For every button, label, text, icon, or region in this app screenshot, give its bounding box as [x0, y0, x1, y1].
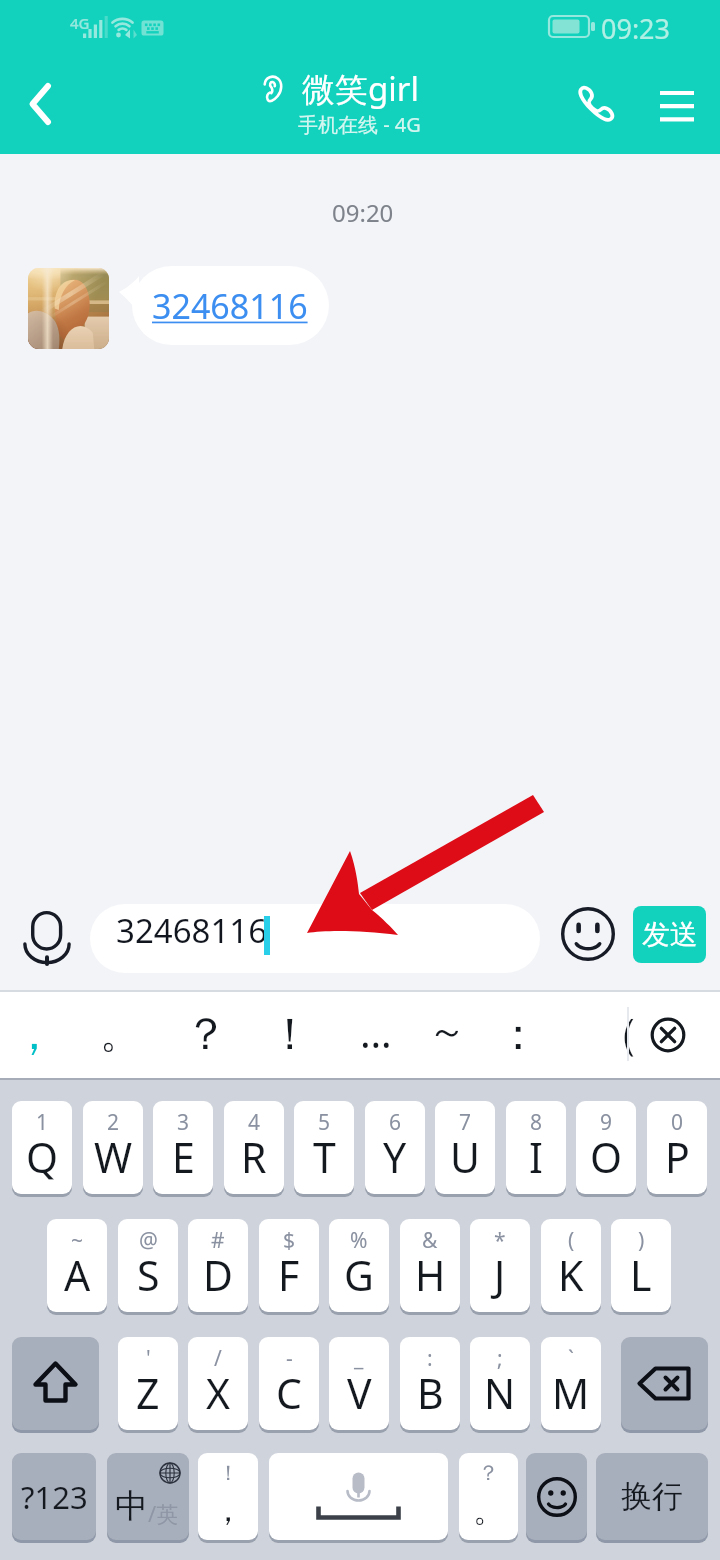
staticText: 09:20 [332, 196, 394, 229]
button[interactable]: 3 [153, 1101, 213, 1194]
staticText: _ [354, 1344, 364, 1373]
button[interactable]: Emoji [553, 899, 623, 969]
button[interactable]: ` [541, 1337, 601, 1430]
staticText: - [286, 1344, 293, 1373]
staticText: R [241, 1129, 267, 1185]
staticText: 3 [177, 1108, 190, 1137]
button[interactable]: 换行 [596, 1453, 708, 1540]
staticText: 09:23 [601, 10, 671, 47]
staticText: ?123 [21, 1476, 88, 1518]
button[interactable]: ？ [459, 1453, 518, 1540]
staticText: @ [139, 1226, 158, 1255]
staticText: ！ [268, 1007, 312, 1062]
staticText: 9 [600, 1108, 613, 1137]
button[interactable]: ！ [198, 1453, 258, 1540]
button[interactable]: Backspace [621, 1337, 708, 1430]
button[interactable]: _ [329, 1337, 389, 1430]
staticText: ) [638, 1226, 645, 1255]
staticText: V [347, 1365, 372, 1421]
button[interactable]: # [188, 1219, 248, 1312]
staticText: 中 [115, 1485, 148, 1527]
staticText: 手机在线 - 4G [298, 111, 421, 138]
button[interactable]: 6 [365, 1101, 425, 1194]
button[interactable]: ~ [47, 1219, 107, 1312]
staticText: % [350, 1226, 368, 1255]
staticText: 8 [530, 1108, 543, 1137]
button[interactable]: 发送 [633, 906, 706, 963]
staticText: O [590, 1129, 623, 1185]
staticText: K [558, 1247, 584, 1303]
button[interactable]: 5 [294, 1101, 354, 1194]
button[interactable]: ) [611, 1219, 671, 1312]
staticText: … [360, 1005, 392, 1059]
button[interactable]: 2 [83, 1101, 143, 1194]
button[interactable]: 0 [647, 1101, 707, 1194]
button[interactable]: 。 [86, 990, 154, 1078]
button[interactable]: / [188, 1337, 248, 1430]
staticText: H [415, 1247, 446, 1303]
staticText: ' [146, 1344, 151, 1373]
button[interactable]: 9 [576, 1101, 636, 1194]
button[interactable]: 32468116 [90, 904, 540, 973]
button[interactable]: ： [484, 990, 552, 1078]
staticText: ， [212, 1490, 244, 1530]
button[interactable]: @ [118, 1219, 178, 1312]
staticText: $ [283, 1226, 296, 1255]
button[interactable]: Emoji [526, 1453, 587, 1540]
button[interactable]: ？ [172, 990, 240, 1078]
button[interactable]: 1 [12, 1101, 72, 1194]
staticText: B [417, 1365, 444, 1421]
staticText: G [344, 1247, 374, 1303]
button[interactable]: 7 [435, 1101, 495, 1194]
button[interactable]: * [470, 1219, 530, 1312]
staticText: 1 [36, 1108, 49, 1137]
button[interactable]: - [259, 1337, 319, 1430]
button[interactable]: … [342, 990, 410, 1078]
button[interactable]: ?123 [12, 1453, 96, 1540]
staticText: 32468116 [116, 908, 268, 953]
button[interactable]: Avatar [28, 268, 109, 349]
staticText: ！ [218, 1460, 239, 1486]
other: Switch language [107, 1453, 189, 1540]
staticText: ; [497, 1344, 503, 1373]
staticText: * [494, 1226, 506, 1255]
staticText: ， [12, 1007, 56, 1062]
staticText: T [313, 1129, 336, 1185]
button[interactable]: ！ [256, 990, 324, 1078]
staticText: A [64, 1247, 91, 1303]
staticText: W [94, 1129, 133, 1185]
button[interactable]: ; [470, 1337, 530, 1430]
button[interactable]: ' [118, 1337, 178, 1430]
staticText: # [211, 1226, 225, 1255]
button[interactable]: 32468116 [119, 266, 329, 345]
staticText: P [665, 1129, 690, 1185]
staticText: E [172, 1129, 195, 1185]
button[interactable]: Call [561, 69, 631, 139]
button[interactable]: Hide keyboard [634, 990, 702, 1078]
button[interactable]: ， [0, 990, 68, 1078]
staticText: 2 [107, 1108, 120, 1137]
button[interactable]: : [400, 1337, 460, 1430]
staticText: 4G [70, 13, 90, 33]
button[interactable]: Menu [642, 70, 712, 140]
button[interactable]: & [400, 1219, 460, 1312]
staticText: U [450, 1129, 480, 1185]
button[interactable]: Back [0, 54, 80, 154]
button[interactable]: Switch language [107, 1453, 189, 1540]
button[interactable]: ～ [413, 990, 481, 1078]
button[interactable]: 8 [506, 1101, 566, 1194]
staticText: M [552, 1365, 590, 1421]
button[interactable]: $ [259, 1219, 319, 1312]
button[interactable]: （ [584, 990, 652, 1078]
staticText: S [137, 1247, 160, 1303]
button[interactable]: 4 [224, 1101, 284, 1194]
staticText: /英 [148, 1498, 179, 1528]
staticText: ~ [71, 1226, 84, 1255]
button[interactable]: Space [269, 1453, 448, 1540]
staticText: ？ [478, 1460, 499, 1486]
button[interactable]: Voice input [13, 899, 81, 967]
button[interactable]: Shift [12, 1337, 99, 1430]
button[interactable]: % [329, 1219, 389, 1312]
staticText: （ [596, 1007, 640, 1062]
button[interactable]: ( [541, 1219, 601, 1312]
